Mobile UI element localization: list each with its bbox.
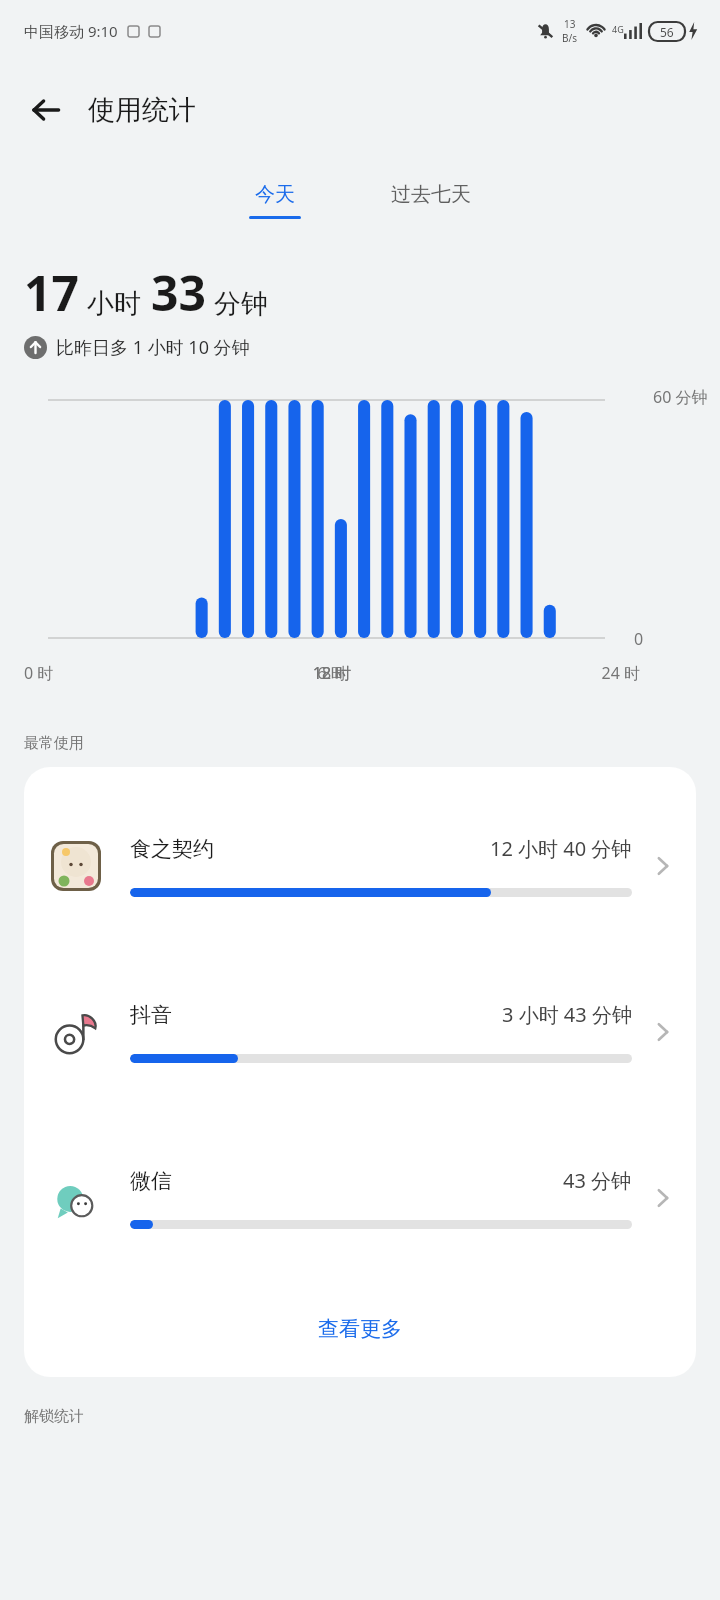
staticText: 分钟 — [214, 287, 268, 321]
button[interactable]: 过去七天 — [375, 176, 487, 225]
staticText: 查看更多 — [318, 1316, 402, 1342]
button[interactable]: 返回 — [18, 82, 74, 138]
staticText: 43 分钟 — [563, 1167, 632, 1194]
staticText: 24 时 — [24, 662, 640, 684]
staticText: 60 分钟 — [653, 386, 708, 408]
staticText: 比昨日多 1 小时 10 分钟 — [56, 335, 250, 360]
button[interactable]: 抖音 — [24, 949, 696, 1115]
staticText: 12 小时 40 分钟 — [490, 835, 632, 862]
staticText: 食之契约 — [130, 836, 214, 862]
staticText: B/s — [562, 31, 578, 45]
staticText: 13 — [564, 17, 576, 31]
staticText: 小时 — [87, 287, 141, 321]
staticText: 12 时 — [24, 662, 640, 684]
staticText: 18 时 — [24, 662, 640, 684]
staticText: 微信 — [130, 1168, 172, 1194]
staticText: 0 — [634, 628, 644, 650]
staticText: 3 小时 43 分钟 — [502, 1001, 632, 1028]
button[interactable]: 查看更多 — [24, 1281, 696, 1377]
staticText: 今天 — [255, 182, 295, 207]
staticText: 6 时 — [24, 662, 640, 684]
button[interactable]: 微信 — [24, 1115, 696, 1281]
staticText: 中国移动 9:10 — [24, 21, 118, 41]
staticText: 56 — [660, 24, 674, 40]
staticText: 0 时 — [24, 662, 640, 684]
staticText: 33 — [151, 260, 206, 325]
staticText: 4G — [612, 23, 624, 35]
button[interactable]: 食之契约 — [24, 783, 696, 949]
staticText: 过去七天 — [391, 182, 471, 207]
staticText: 解锁统计 — [24, 1407, 84, 1426]
button[interactable]: 今天 — [233, 176, 317, 225]
staticText: 最常使用 — [24, 734, 84, 753]
staticText: 使用统计 — [88, 93, 196, 127]
staticText: 17 — [24, 260, 79, 325]
staticText: 抖音 — [130, 1002, 172, 1028]
